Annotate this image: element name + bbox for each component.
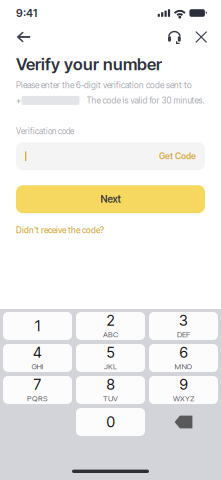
staticText: 1 [35,317,40,335]
button[interactable]: Back [0,26,39,47]
button[interactable]: 2 [76,312,145,340]
button[interactable]: 8 [76,376,145,404]
staticText: WXYZ [173,394,194,403]
staticText: 0 [106,413,114,431]
button[interactable]: Delete [149,408,218,436]
staticText: 9:41 [16,6,37,20]
staticText: Didn't receive the code? [16,225,104,235]
button[interactable]: 0 [76,408,145,436]
staticText: 9 [179,375,187,393]
staticText: TUV [103,394,118,403]
button[interactable]: 3 [149,312,218,340]
button[interactable]: 1 [3,312,72,340]
staticText: Next [100,193,120,205]
staticText: 4 [33,343,42,361]
button[interactable]: Didn't receive the code? [16,222,104,238]
staticText: Get Code [159,151,196,161]
staticText: ABC [103,330,118,339]
staticText: PQRS [27,394,48,403]
staticText: Please enter the 6-digit verification co… [16,80,192,90]
button[interactable]: 9 [149,376,218,404]
button[interactable]: 6 [149,344,218,372]
button[interactable]: 7 [3,376,72,404]
button[interactable]: Contact support [160,26,188,47]
staticText: GHI [31,362,43,371]
staticText: + [16,95,21,105]
staticText: DEF [177,330,190,339]
staticText: 6 [179,343,187,361]
button[interactable]: Next [16,185,205,213]
staticText: 2 [106,311,114,329]
staticText: 3 [179,311,188,329]
staticText: 5 [106,343,114,361]
button[interactable]: 5 [76,344,145,372]
staticText: JKL [104,362,117,371]
staticText: Verify your number [16,54,162,74]
staticText: The code is valid for 30 minutes. [86,95,204,105]
button[interactable]: 4 [3,344,72,372]
staticText: 8 [106,375,114,393]
button[interactable]: Get Code [151,145,196,167]
button[interactable]: Close [188,28,221,46]
staticText: 7 [33,375,41,393]
staticText: MNO [174,362,192,371]
staticText: Verification code [16,126,74,136]
